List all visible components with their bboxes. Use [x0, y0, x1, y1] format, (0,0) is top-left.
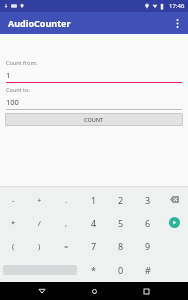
staticText: 3: [145, 194, 151, 206]
staticText: 4: [91, 217, 97, 229]
button[interactable]: #: [134, 258, 161, 282]
staticText: 9: [145, 240, 151, 252]
staticText: 0: [118, 264, 124, 276]
staticText: =: [64, 241, 69, 251]
staticText: Count from:: [6, 59, 38, 66]
button[interactable]: -: [0, 188, 26, 211]
button[interactable]: Backspace: [161, 188, 188, 211]
button[interactable]: 2: [107, 188, 134, 211]
button[interactable]: ): [26, 234, 53, 258]
staticText: COUNT: [84, 116, 104, 123]
staticText: ): [38, 241, 41, 251]
button[interactable]: +: [26, 188, 53, 211]
staticText: 1: [91, 194, 97, 206]
button[interactable]: Enter: [161, 211, 188, 234]
staticText: ,: [65, 218, 68, 228]
staticText: /: [38, 218, 41, 228]
staticText: AudioCounter: [8, 17, 71, 29]
button[interactable]: 7: [80, 234, 107, 258]
button[interactable]: Recent apps: [138, 283, 154, 299]
staticText: (: [12, 241, 15, 251]
button[interactable]: ,: [53, 211, 80, 234]
staticText: 6: [145, 217, 151, 229]
button[interactable]: COUNT: [5, 113, 183, 126]
staticText: #: [145, 264, 151, 276]
button[interactable]: More options: [166, 12, 188, 34]
staticText: 2: [118, 194, 124, 206]
staticText: 100: [6, 97, 19, 107]
button[interactable]: 8: [107, 234, 134, 258]
button[interactable]: (: [0, 234, 26, 258]
staticText: 8: [118, 240, 124, 252]
button[interactable]: 1: [6, 70, 182, 80]
staticText: 1: [6, 70, 11, 80]
staticText: 17:46: [169, 2, 185, 10]
button[interactable]: 9: [134, 234, 161, 258]
button[interactable]: 5: [107, 211, 134, 234]
button[interactable]: =: [53, 234, 80, 258]
button[interactable]: Back: [34, 283, 50, 299]
staticText: Count to:: [6, 86, 30, 93]
staticText: 5: [118, 217, 124, 229]
staticText: +: [37, 195, 42, 205]
button[interactable]: /: [26, 211, 53, 234]
button[interactable]: 0: [107, 258, 134, 282]
staticText: 7: [91, 240, 97, 252]
button[interactable]: 4: [80, 211, 107, 234]
staticText: .: [65, 195, 68, 205]
button[interactable]: *: [0, 211, 26, 234]
staticText: -: [12, 195, 15, 205]
button[interactable]: *: [80, 258, 107, 282]
staticText: *: [11, 218, 16, 228]
button[interactable]: 1: [80, 188, 107, 211]
button[interactable]: 3: [134, 188, 161, 211]
button[interactable]: Home: [86, 283, 102, 299]
button[interactable]: 6: [134, 211, 161, 234]
staticText: *: [91, 264, 96, 276]
button[interactable]: 100: [6, 97, 182, 107]
